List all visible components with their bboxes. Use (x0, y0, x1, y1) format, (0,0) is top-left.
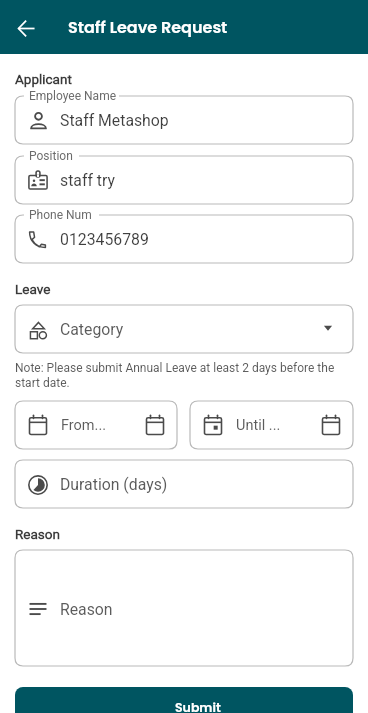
button[interactable]: Back (0, 0, 54, 54)
button[interactable]: From... (15, 401, 177, 449)
staticText: Employee Name (29, 89, 117, 103)
button[interactable]: Employee Name (15, 96, 353, 144)
staticText: Position (29, 149, 73, 163)
staticText: From... (61, 417, 107, 434)
staticText: Reason (60, 600, 113, 616)
other: Expand category (321, 321, 335, 335)
staticText: Staff Metashop (60, 111, 169, 130)
button[interactable]: Position (15, 156, 353, 204)
staticText: staff try (60, 171, 115, 190)
staticText: Note: Please submit Annual Leave at leas… (15, 361, 339, 390)
other: Pick date (145, 414, 165, 434)
staticText: Phone Num (29, 208, 92, 222)
staticText: Submit (175, 699, 221, 713)
staticText: 0123456789 (60, 230, 149, 249)
staticText: Category (60, 320, 124, 339)
staticText: Staff Leave Request (68, 16, 228, 38)
button[interactable]: Reason (15, 550, 353, 666)
button[interactable]: Phone Num (15, 215, 353, 263)
button[interactable]: Duration (days) (15, 460, 353, 508)
button[interactable]: Category (15, 305, 353, 353)
staticText: Leave (15, 281, 51, 297)
staticText: Duration (days) (60, 475, 168, 494)
staticText: Until ... (236, 417, 281, 434)
staticText: Reason (15, 526, 60, 542)
button[interactable]: Submit (15, 687, 353, 713)
other: Pick date (321, 414, 341, 434)
staticText: Applicant (15, 71, 72, 87)
button[interactable]: Until ... (190, 401, 353, 449)
